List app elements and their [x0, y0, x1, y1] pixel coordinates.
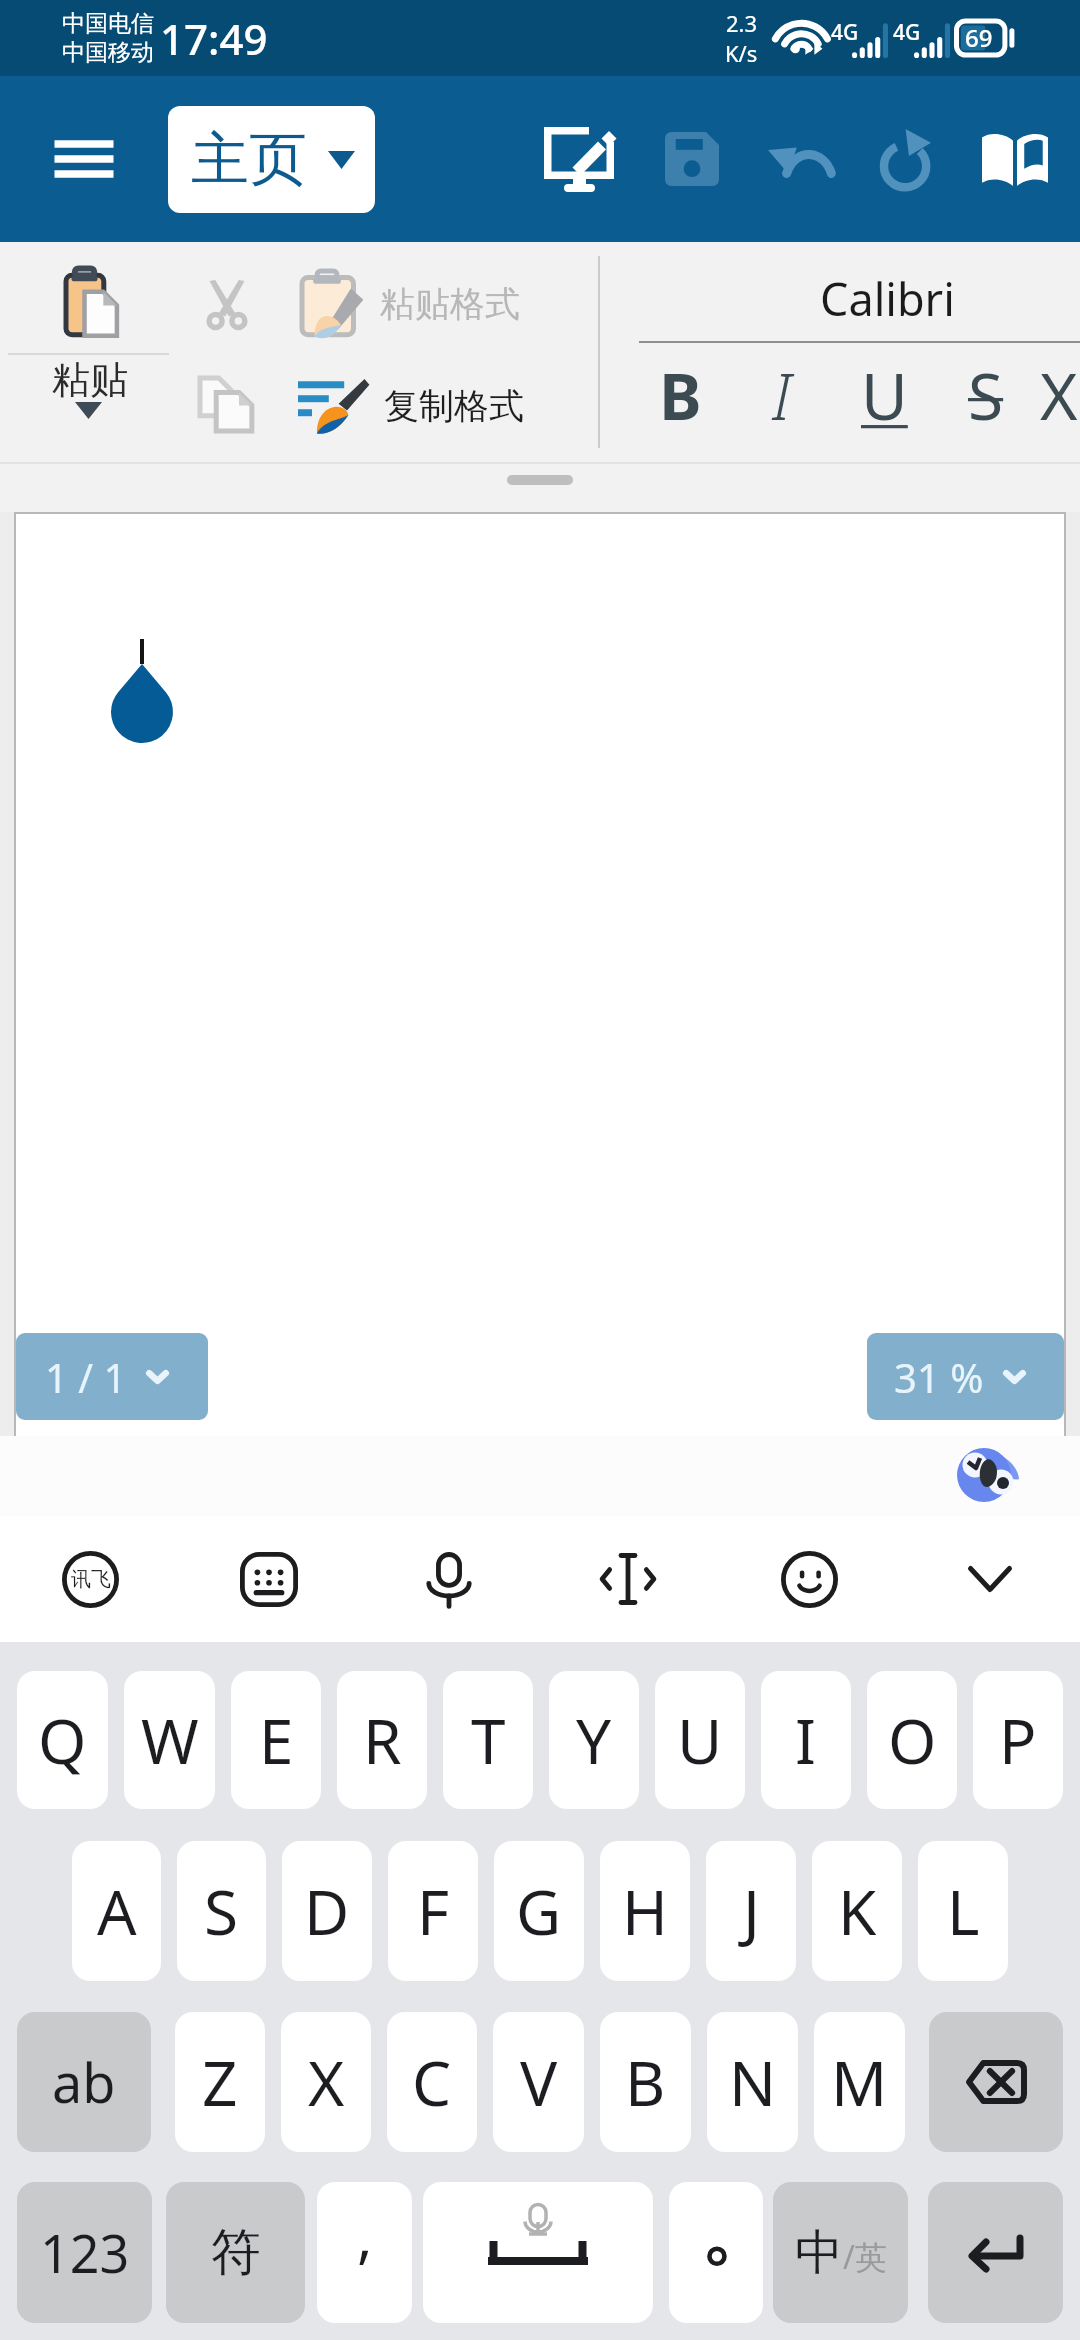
button[interactable]: A — [72, 1841, 161, 1981]
button[interactable]: Z — [175, 2012, 265, 2152]
button[interactable]: I — [761, 1671, 851, 1809]
staticText: D — [304, 1869, 350, 1953]
staticText: F — [417, 1869, 450, 1953]
staticText: 17:49 — [160, 10, 268, 67]
button[interactable]: M — [814, 2012, 905, 2152]
button[interactable]: Input method logo — [956, 1447, 1022, 1505]
button[interactable]: I — [731, 343, 833, 447]
button[interactable]: Enter — [928, 2182, 1063, 2323]
staticText: X — [1040, 352, 1078, 439]
button[interactable]: Q — [17, 1671, 108, 1809]
button[interactable]: Copy — [182, 365, 272, 445]
staticText: U — [677, 1698, 723, 1782]
button[interactable]: Calibri — [695, 242, 1080, 341]
button[interactable]: Emoji — [761, 1529, 857, 1629]
button[interactable]: H — [600, 1841, 690, 1981]
button[interactable]: Save — [652, 104, 732, 214]
button[interactable]: W — [124, 1671, 215, 1809]
staticText: 1 / 1 — [45, 1350, 127, 1404]
button[interactable]: Period — [669, 2182, 763, 2323]
staticText: 123 — [40, 2217, 130, 2288]
staticText: P — [999, 1698, 1037, 1782]
button[interactable]: 粘贴格式 — [300, 262, 520, 346]
button[interactable]: B — [600, 2012, 691, 2152]
button[interactable]: 31 % — [867, 1333, 1064, 1420]
button[interactable]: S — [177, 1841, 266, 1981]
staticText: N — [729, 2040, 777, 2124]
staticText: J — [743, 1869, 760, 1953]
button[interactable]: X — [1037, 343, 1080, 447]
staticText: B — [625, 2040, 666, 2124]
staticText: /英 — [843, 2235, 887, 2279]
staticText: U — [861, 352, 908, 439]
button[interactable]: Edit — [536, 104, 628, 214]
button[interactable]: O — [867, 1671, 957, 1809]
staticText: M — [831, 2040, 888, 2124]
staticText: E — [259, 1698, 294, 1782]
button[interactable]: Cursor control — [580, 1529, 676, 1629]
staticText: R — [363, 1698, 402, 1782]
button[interactable]: D — [282, 1841, 372, 1981]
staticText: A — [97, 1869, 137, 1953]
button[interactable]: Read mode — [972, 104, 1058, 214]
button[interactable]: K — [812, 1841, 902, 1981]
staticText: 2.3 — [726, 8, 758, 38]
staticText: 31 % — [894, 1350, 984, 1404]
button[interactable]: U — [833, 343, 935, 447]
button[interactable]: P — [973, 1671, 1063, 1809]
button[interactable]: N — [707, 2012, 798, 2152]
staticText: H — [622, 1869, 668, 1953]
button[interactable]: 复制格式 — [298, 364, 524, 448]
staticText: B — [659, 352, 702, 439]
staticText: 粘贴 — [52, 356, 128, 404]
button[interactable]: 主页 — [168, 106, 375, 213]
button[interactable]: 粘贴 — [0, 242, 175, 462]
button[interactable]: T — [443, 1671, 533, 1809]
staticText: 讯飞 — [71, 1567, 111, 1592]
button[interactable]: ab — [17, 2012, 151, 2152]
button[interactable]: 123 — [17, 2182, 152, 2323]
staticText: T — [471, 1698, 506, 1782]
button[interactable]: Redo — [868, 104, 946, 214]
staticText: V — [520, 2040, 558, 2124]
button[interactable]: Input method — [42, 1529, 138, 1629]
button[interactable]: 符 — [166, 2182, 305, 2323]
staticText: 符 — [211, 2221, 261, 2284]
button[interactable]: F — [388, 1841, 478, 1981]
button[interactable]: B — [629, 343, 731, 447]
button[interactable]: Undo — [758, 104, 842, 214]
staticText: G — [516, 1869, 562, 1953]
button[interactable]: , — [317, 2182, 412, 2323]
button[interactable]: R — [337, 1671, 427, 1809]
staticText: C — [412, 2040, 452, 2124]
button[interactable]: L — [918, 1841, 1008, 1981]
staticText: 粘贴格式 — [380, 282, 520, 326]
staticText: K/s — [725, 38, 758, 68]
button[interactable]: 1 / 1 — [16, 1333, 208, 1420]
button[interactable]: Y — [549, 1671, 639, 1809]
button[interactable]: Space — [423, 2182, 653, 2323]
button[interactable]: C — [387, 2012, 477, 2152]
button[interactable]: X — [281, 2012, 371, 2152]
button[interactable]: Menu — [36, 119, 132, 199]
button[interactable]: J — [706, 1841, 796, 1981]
staticText: I — [772, 352, 792, 439]
staticText: 中 — [795, 2223, 843, 2283]
button[interactable]: E — [231, 1671, 321, 1809]
button[interactable]: S — [935, 343, 1037, 447]
button[interactable]: U — [655, 1671, 745, 1809]
button[interactable]: Hide keyboard — [942, 1529, 1038, 1629]
button[interactable]: 中 — [773, 2182, 908, 2323]
staticText: ab — [52, 2045, 116, 2119]
button[interactable]: G — [494, 1841, 584, 1981]
staticText: 4G — [831, 18, 859, 47]
button[interactable]: V — [493, 2012, 584, 2152]
staticText: 中国移动 — [62, 38, 154, 67]
staticText: 主页 — [191, 123, 307, 196]
button[interactable]: Voice input — [401, 1529, 497, 1629]
staticText: S — [204, 1869, 239, 1953]
button[interactable]: Backspace — [929, 2012, 1063, 2152]
button[interactable]: Keyboard layout — [221, 1529, 317, 1629]
staticText: K — [838, 1869, 877, 1953]
button[interactable]: Cut — [182, 264, 272, 344]
